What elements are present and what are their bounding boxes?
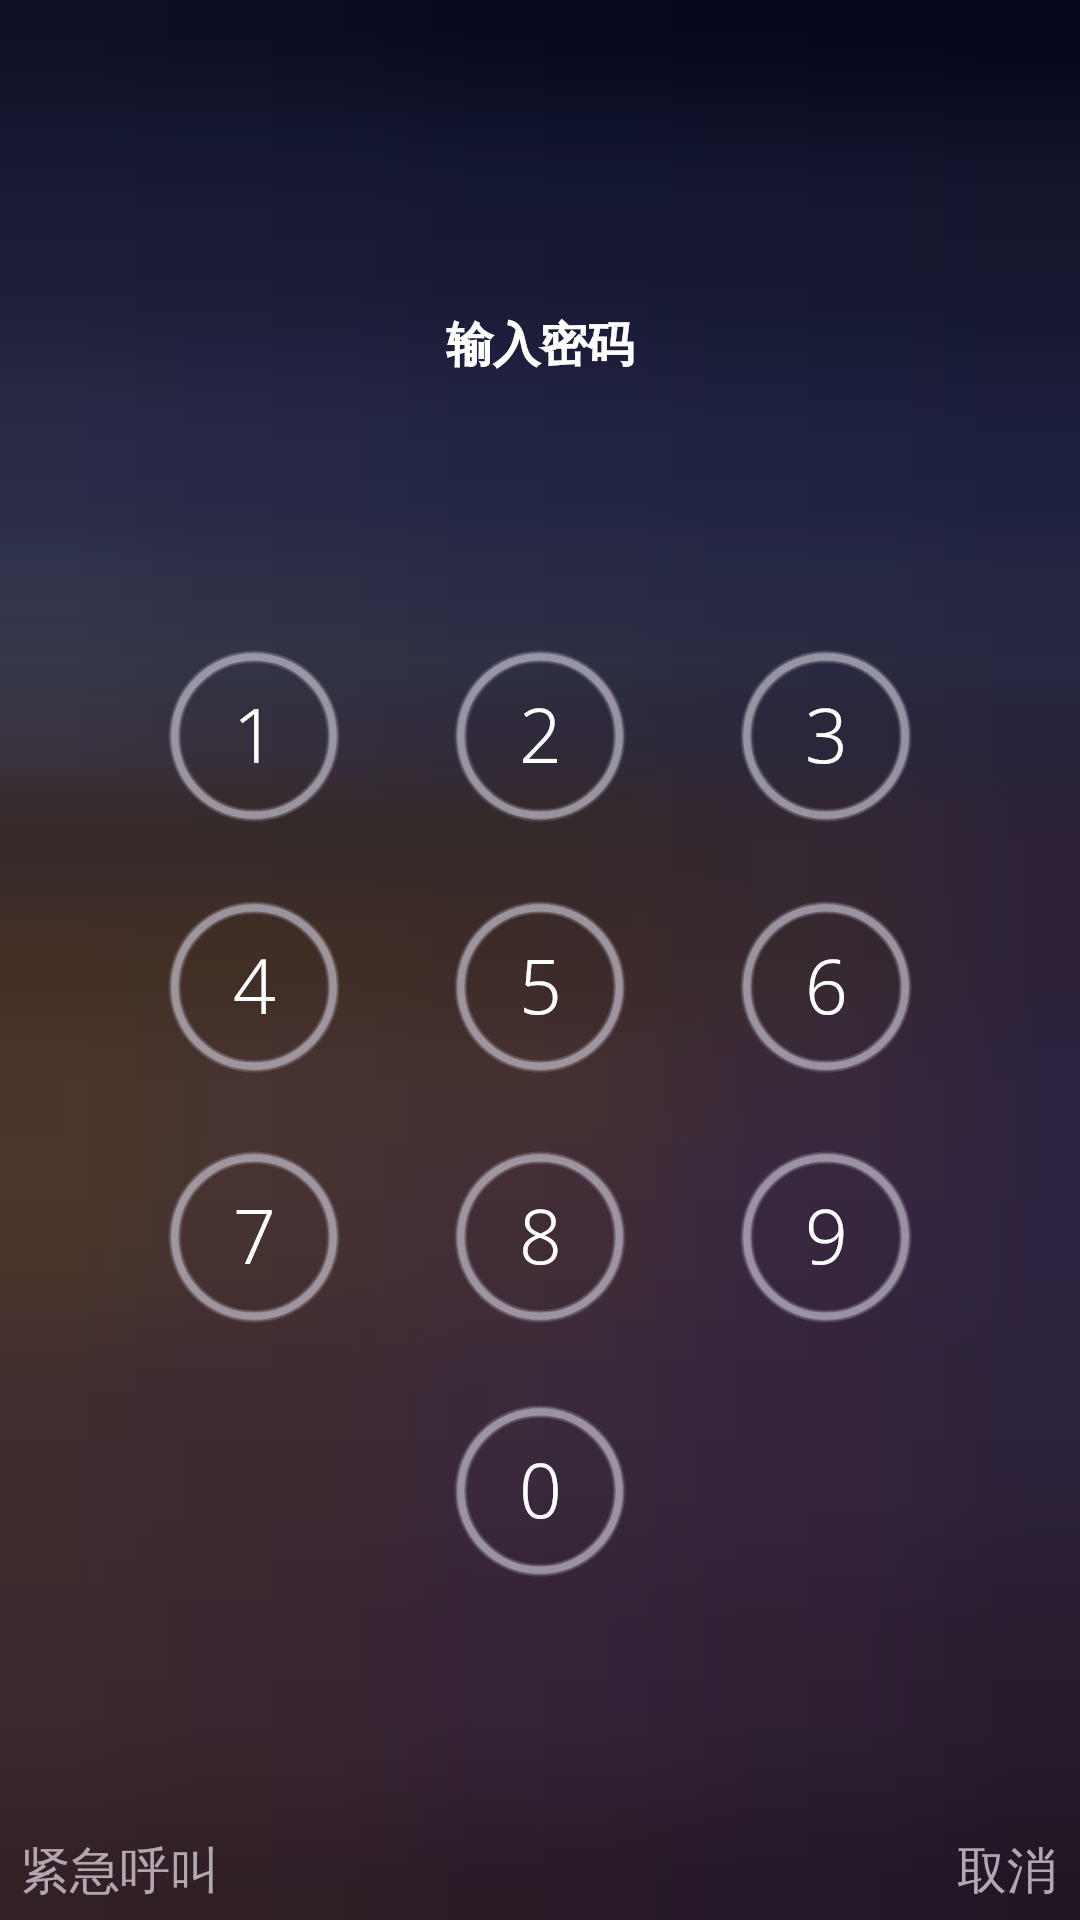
button[interactable]: 紧急呼叫 (16, 1836, 224, 1907)
button[interactable]: Digit 2 (447, 643, 633, 829)
button[interactable]: Digit 3 (733, 643, 919, 829)
staticText: 紧急呼叫 (20, 1840, 220, 1903)
button[interactable]: 取消 (953, 1836, 1061, 1907)
staticText: 7 (233, 1184, 276, 1286)
staticText: 9 (805, 1184, 848, 1286)
staticText: 4 (233, 934, 276, 1036)
staticText: 输入密码 (0, 316, 1080, 375)
button[interactable]: Digit 4 (161, 894, 347, 1080)
button[interactable]: Digit 5 (447, 894, 633, 1080)
staticText: 3 (805, 683, 848, 785)
button[interactable]: Digit 1 (161, 643, 347, 829)
button[interactable]: Digit 8 (447, 1144, 633, 1330)
staticText: 5 (519, 934, 562, 1036)
staticText: 0 (519, 1438, 562, 1540)
staticText: 2 (519, 683, 562, 785)
button[interactable]: Digit 6 (733, 894, 919, 1080)
button[interactable]: Digit 7 (161, 1144, 347, 1330)
staticText: 6 (805, 934, 848, 1036)
staticText: 8 (519, 1184, 562, 1286)
button[interactable]: Digit 9 (733, 1144, 919, 1330)
button[interactable]: Digit 0 (447, 1398, 633, 1584)
staticText: 1 (233, 683, 276, 785)
staticText: 取消 (957, 1840, 1057, 1903)
